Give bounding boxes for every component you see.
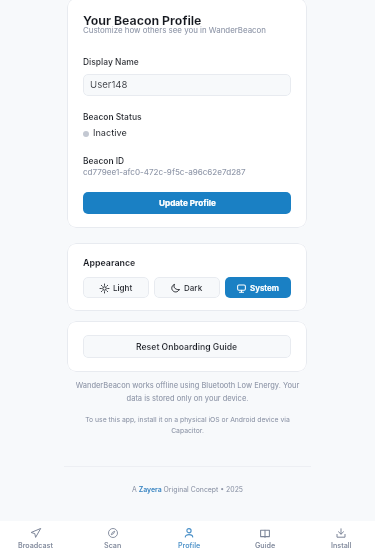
staticText: To use this app, install it on a physica… (85, 415, 290, 434)
staticText: Appearance (83, 258, 136, 269)
staticText: System (250, 283, 279, 293)
staticText: Broadcast (18, 541, 53, 550)
staticText: Reset Onboarding Guide (136, 342, 238, 352)
staticText: Profile (178, 541, 201, 550)
button[interactable]: Broadcast (0, 521, 74, 553)
staticText: Dark (184, 283, 203, 293)
staticText: A Zayera Original Concept • 2025 (132, 485, 244, 493)
staticText: Beacon Status (83, 112, 142, 122)
staticText: WanderBeacon works offline using Bluetoo… (73, 381, 302, 403)
staticText: cd779ee1-afc0-472c-9f5c-a96c62e7d287 (83, 167, 246, 177)
staticText: Your Beacon Profile (83, 13, 202, 28)
button[interactable]: Reset Onboarding Guide (83, 335, 291, 358)
staticText: Display Name (83, 57, 139, 67)
button[interactable]: Update Profile (83, 192, 291, 214)
staticText: Guide (255, 541, 276, 550)
staticText: Install (331, 541, 352, 550)
staticText: Beacon ID (83, 156, 125, 166)
button[interactable]: Scan (74, 521, 151, 553)
button[interactable]: Light (83, 277, 149, 298)
staticText: Inactive (93, 127, 127, 138)
button[interactable]: Install (303, 521, 375, 553)
staticText: Light (113, 283, 133, 293)
staticText: Update Profile (159, 198, 216, 208)
button[interactable]: User148 (83, 74, 291, 96)
button[interactable]: System (225, 277, 291, 298)
button[interactable]: Dark (154, 277, 220, 298)
staticText: User148 (90, 79, 128, 91)
staticText: Customize how others see you in WanderBe… (83, 25, 267, 35)
button[interactable]: Guide (227, 521, 303, 553)
button[interactable]: Profile (151, 521, 227, 553)
staticText: Scan (104, 541, 122, 550)
